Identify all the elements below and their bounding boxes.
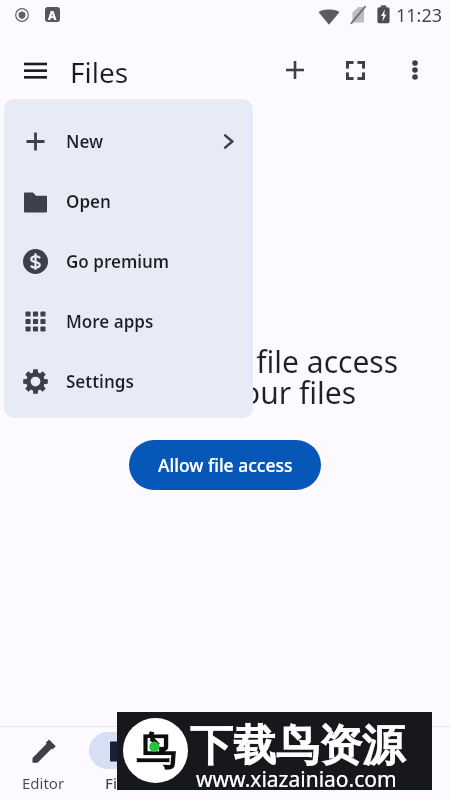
staticText: Allow file access	[158, 453, 293, 477]
staticText: Settings	[66, 370, 134, 393]
staticText: A	[48, 7, 57, 22]
staticText: Files	[105, 773, 137, 793]
button[interactable]: Open	[4, 171, 253, 231]
staticText: 11:23	[396, 3, 443, 28]
button[interactable]: New	[4, 111, 253, 171]
button[interactable]: Editor	[5, 727, 82, 800]
staticText: Go premium	[66, 250, 170, 273]
button[interactable]: Cloud	[159, 727, 236, 800]
staticText: Editor	[22, 773, 65, 793]
staticText: Files	[70, 53, 129, 91]
staticText: www.xiazainiao.com	[196, 765, 397, 794]
button[interactable]: Allow file access	[129, 440, 321, 490]
staticText: 下载鸟资源	[190, 719, 405, 773]
button[interactable]: More options	[391, 46, 439, 94]
staticText: More apps	[66, 310, 154, 333]
button[interactable]: Recent	[236, 727, 313, 800]
staticText: Tools	[333, 773, 370, 793]
staticText: Recent	[250, 773, 299, 793]
button[interactable]: Navigation menu	[11, 48, 59, 96]
staticText: Open	[66, 190, 111, 213]
button[interactable]: Select	[331, 46, 379, 94]
button[interactable]: Settings	[4, 351, 253, 411]
button[interactable]: Add	[271, 46, 319, 94]
staticText: New	[66, 130, 104, 153]
button[interactable]: More apps	[4, 291, 253, 351]
button[interactable]: Files	[82, 727, 159, 800]
staticText: Cloud	[177, 773, 218, 793]
staticText: Allow this app file access to see all yo…	[0, 341, 450, 413]
button[interactable]: Go premium	[4, 231, 253, 291]
staticText: 鸟	[136, 726, 176, 776]
button[interactable]: Tools	[313, 727, 390, 800]
